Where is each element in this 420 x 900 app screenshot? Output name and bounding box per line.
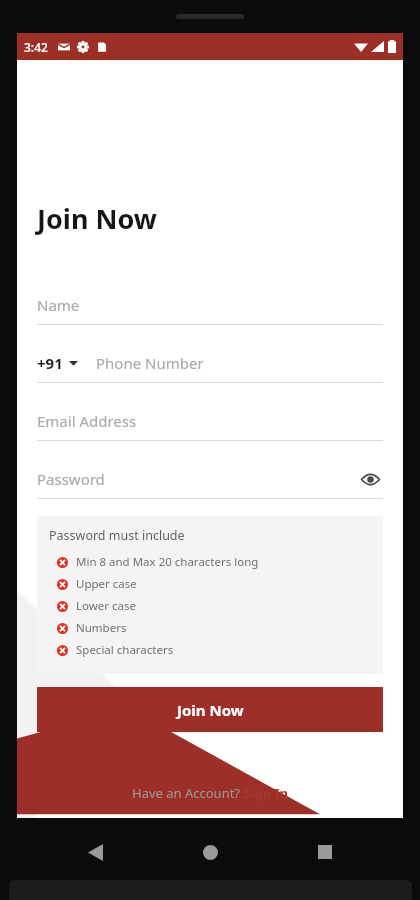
staticText: Join Now: [37, 200, 157, 237]
button[interactable]: Password: [37, 466, 383, 499]
button[interactable]: Join Now: [37, 687, 383, 732]
staticText: Have an Account? Sign In: [132, 784, 288, 802]
staticText: 3:42: [24, 39, 48, 55]
button[interactable]: Name: [37, 292, 383, 325]
button[interactable]: Show password: [357, 466, 383, 492]
staticText: Password: [37, 469, 357, 489]
button[interactable]: Back: [75, 832, 115, 872]
button[interactable]: +91: [37, 350, 383, 383]
button[interactable]: +91: [37, 353, 80, 373]
button[interactable]: Recent apps: [305, 832, 345, 872]
button[interactable]: Home: [190, 832, 230, 872]
button[interactable]: Email Address: [37, 408, 383, 441]
staticText: Lower case: [76, 598, 136, 614]
staticText: Special characters: [76, 642, 174, 658]
staticText: Phone Number: [96, 353, 204, 373]
staticText: Upper case: [76, 576, 137, 592]
staticText: Join Now: [177, 700, 244, 720]
staticText: Password must include: [49, 527, 185, 544]
staticText: Name: [37, 295, 80, 315]
staticText: Email Address: [37, 411, 137, 431]
staticText: Min 8 and Max 20 characters long: [76, 554, 259, 570]
staticText: +91: [37, 353, 63, 373]
staticText: Numbers: [76, 620, 127, 636]
button[interactable]: Have an Account? Sign In: [126, 778, 294, 808]
